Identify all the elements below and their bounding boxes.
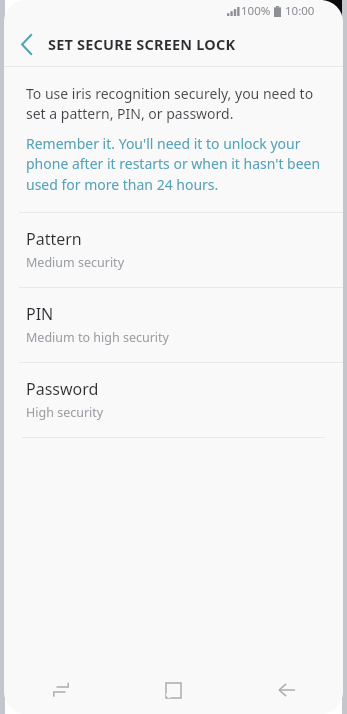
button[interactable]: Home	[117, 666, 230, 714]
staticText: Remember it. You'll need it to unlock yo…	[26, 134, 327, 195]
staticText: Password	[26, 378, 99, 400]
staticText: High security	[26, 404, 104, 421]
staticText: Medium to high security	[26, 329, 169, 346]
button[interactable]: PIN	[4, 288, 343, 362]
button[interactable]: Recent apps	[4, 666, 117, 714]
staticText: To use iris recognition securely, you ne…	[26, 84, 327, 124]
staticText: 100%	[241, 3, 271, 19]
staticText: Pattern	[26, 228, 82, 250]
button[interactable]: Navigate up	[4, 22, 48, 66]
staticText: PIN	[26, 303, 54, 325]
staticText: Medium security	[26, 254, 125, 271]
staticText: 10:00	[285, 3, 315, 19]
button[interactable]: Back	[230, 666, 343, 714]
button[interactable]: Pattern	[4, 213, 343, 287]
button[interactable]: Password	[4, 363, 343, 437]
staticText: SET SECURE SCREEN LOCK	[48, 34, 236, 54]
